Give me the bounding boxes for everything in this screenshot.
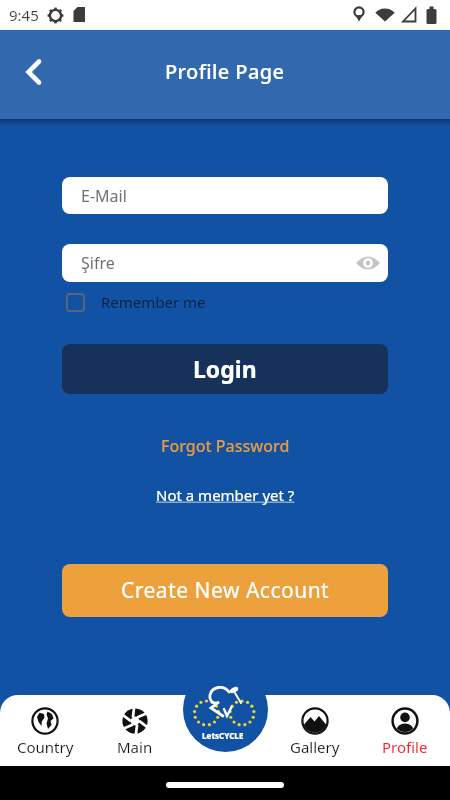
button[interactable]: LetsCYCLE xyxy=(183,667,268,752)
staticText: Main xyxy=(117,737,153,757)
button[interactable]: Login xyxy=(62,344,388,394)
button[interactable]: Country xyxy=(0,703,90,765)
button[interactable]: Not a member yet ? xyxy=(150,479,301,511)
staticText: Remember me xyxy=(101,292,206,312)
staticText: E-Mail xyxy=(81,185,127,207)
button[interactable]: Profile xyxy=(360,703,450,765)
button[interactable]: E-Mail xyxy=(62,177,388,214)
button[interactable] xyxy=(14,52,54,92)
button[interactable]: Main xyxy=(90,703,180,765)
staticText: Not a member yet ? xyxy=(156,485,295,505)
staticText: 9:45 xyxy=(9,5,39,25)
staticText: Login xyxy=(193,353,257,384)
staticText: Gallery xyxy=(290,737,340,757)
staticText: Country xyxy=(17,737,74,757)
button[interactable]: Remember me xyxy=(60,286,206,318)
staticText: Forgot Password xyxy=(161,435,290,457)
staticText: Profile xyxy=(382,737,428,757)
staticText: Create New Account xyxy=(121,576,330,605)
staticText: Şifre xyxy=(81,252,115,274)
button[interactable]: Forgot Password xyxy=(155,429,296,463)
button[interactable]: Gallery xyxy=(270,703,360,765)
button[interactable]: Create New Account xyxy=(62,564,388,617)
staticText: Profile Page xyxy=(165,58,285,85)
button[interactable]: Şifre xyxy=(62,244,388,282)
staticText: LetsCYCLE xyxy=(202,730,244,741)
